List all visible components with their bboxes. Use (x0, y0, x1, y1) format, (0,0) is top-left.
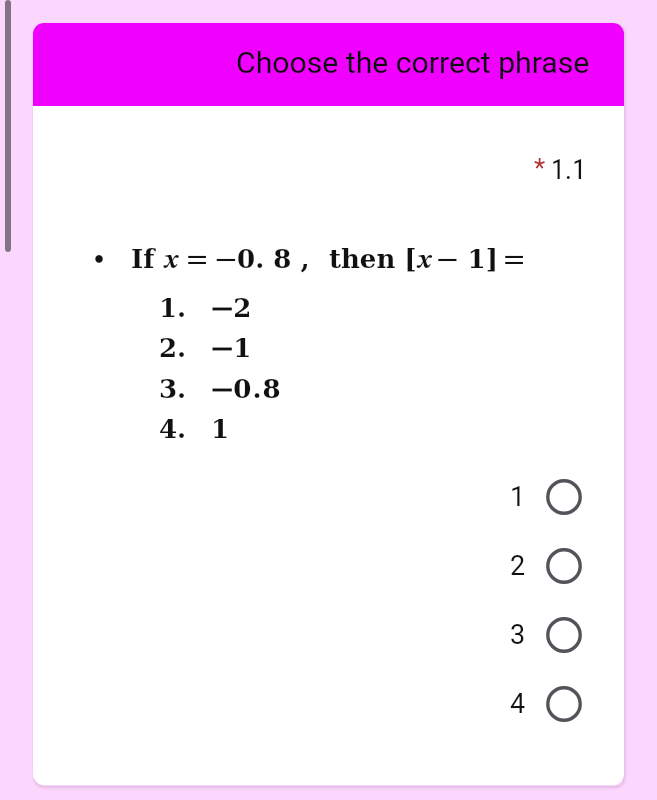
staticText: 1.1 (551, 153, 587, 186)
staticText: 4 (510, 688, 526, 720)
staticText: 3. (159, 374, 187, 405)
button[interactable]: Option 4 (33, 669, 624, 738)
button[interactable]: Option 1 (33, 462, 624, 531)
staticText: −0.8 (211, 374, 282, 406)
staticText: 2. (159, 333, 187, 364)
staticText: * (534, 153, 546, 183)
staticText: 1. (159, 293, 187, 324)
staticText: −1 (211, 333, 253, 365)
staticText: 4. (159, 414, 187, 445)
staticText: If 𝒙 = −0. 8 , then [𝒙 − 1] = (131, 244, 525, 276)
staticText: • (92, 246, 107, 272)
staticText: 2 (510, 550, 526, 582)
button[interactable]: Option 2 (33, 531, 624, 600)
staticText: Choose the correct phrase (236, 45, 590, 80)
staticText: 1 (510, 481, 526, 513)
button[interactable]: Option 3 (33, 600, 624, 669)
staticText: −2 (211, 293, 253, 325)
staticText: 3 (510, 619, 526, 651)
staticText: 1 (211, 414, 230, 445)
